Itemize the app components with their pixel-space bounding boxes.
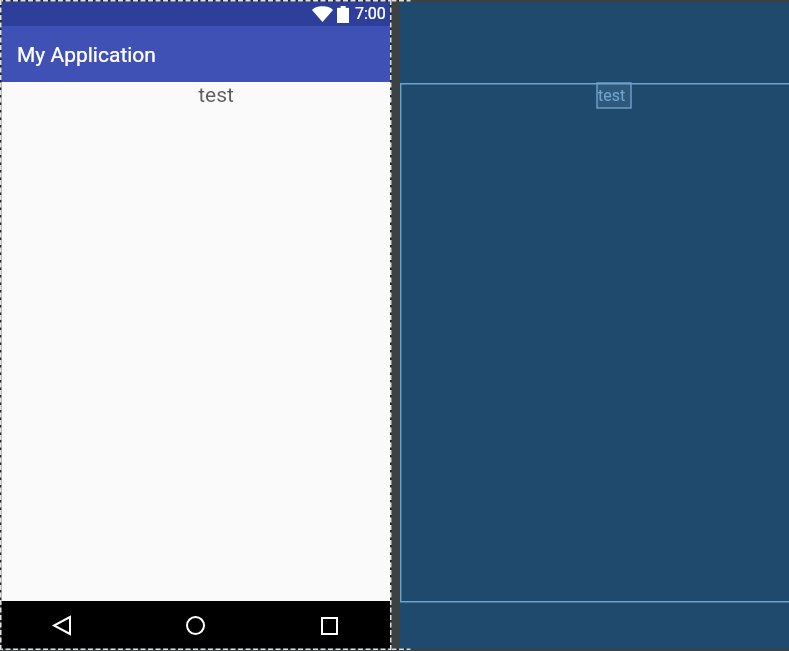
button[interactable]: My Application — [1, 26, 391, 82]
staticText: 7:00 — [355, 4, 386, 23]
button[interactable]: Back — [38, 601, 86, 650]
staticText: My Application — [17, 43, 156, 68]
staticText: test — [198, 83, 234, 108]
button[interactable]: Home — [171, 601, 219, 650]
staticText: test — [598, 86, 626, 105]
button[interactable]: Recents — [305, 601, 353, 650]
button[interactable]: test — [597, 83, 631, 108]
